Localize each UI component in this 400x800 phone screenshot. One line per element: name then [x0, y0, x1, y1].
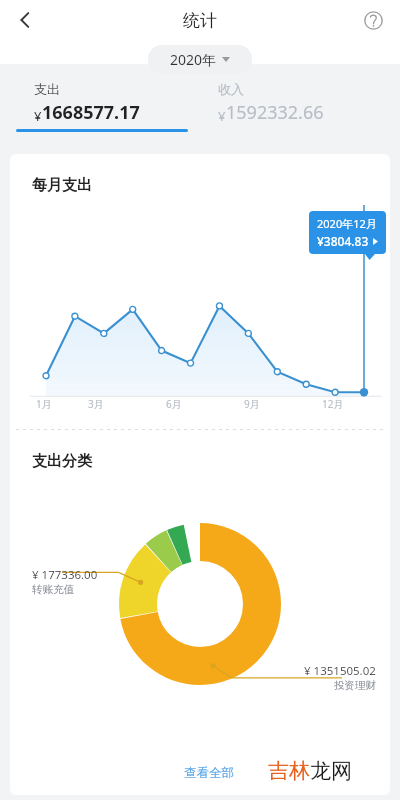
staticText: ¥3804.83 — [317, 233, 369, 249]
staticText: 9月 — [244, 397, 260, 411]
button[interactable]: 收入 — [200, 78, 400, 125]
staticText: ¥ 177336.00 — [32, 567, 98, 583]
button[interactable]: 2020年12月 — [309, 211, 386, 254]
staticText: 收入 — [218, 81, 244, 97]
staticText: 2020年12月 — [317, 216, 377, 231]
staticText: 1668577.17 — [42, 100, 140, 125]
staticText: 2020年 — [170, 50, 217, 69]
staticText: 转账充值 — [32, 583, 74, 596]
staticText: 6月 — [166, 397, 182, 411]
staticText: 1592332.66 — [226, 100, 324, 125]
staticText: 查看全部 — [184, 765, 234, 781]
staticText: 投资理财 — [334, 679, 376, 692]
staticText: 支出 — [34, 81, 60, 97]
staticText: 吉林 — [268, 758, 310, 784]
button[interactable]: 2020年 — [148, 45, 252, 74]
staticText: 每月支出 — [32, 176, 92, 195]
button[interactable]: 查看全部 — [178, 759, 240, 787]
staticText: ¥ 1351505.02 — [304, 663, 376, 679]
staticText: 统计 — [183, 10, 217, 31]
staticText: 龙网 — [310, 758, 352, 784]
button[interactable]: Back — [8, 3, 42, 37]
staticText: 12月 — [322, 397, 344, 411]
staticText: 1月 — [36, 397, 52, 411]
staticText: ¥ — [218, 107, 226, 125]
staticText: 支出分类 — [32, 452, 92, 471]
button[interactable]: Help — [356, 3, 390, 37]
staticText: ¥ — [34, 107, 42, 125]
button[interactable]: 支出 — [0, 78, 200, 125]
staticText: 3月 — [88, 397, 104, 411]
